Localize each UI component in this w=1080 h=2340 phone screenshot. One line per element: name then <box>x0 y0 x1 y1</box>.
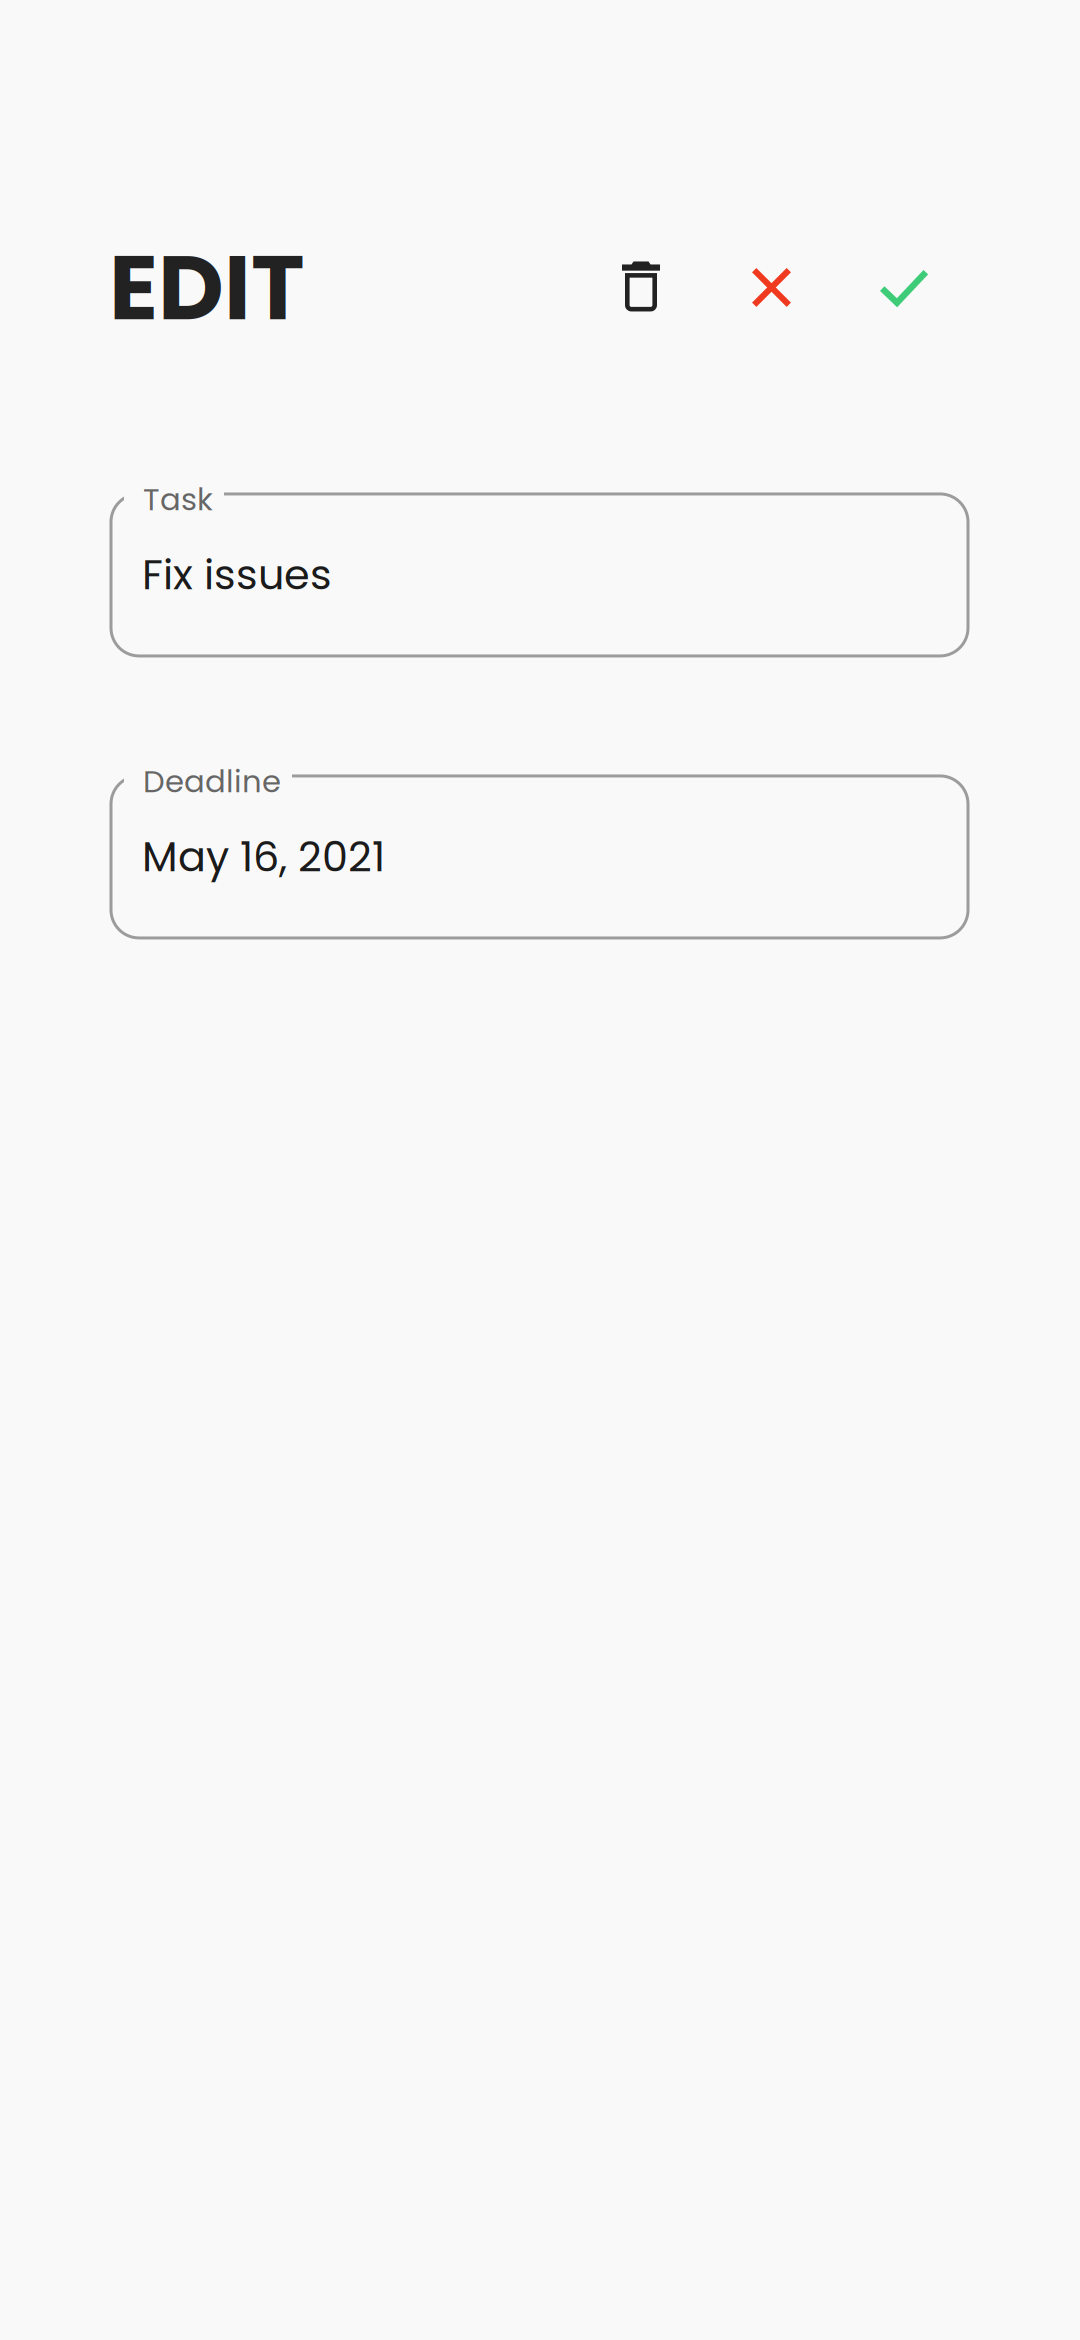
staticText: Fix issues <box>142 546 332 604</box>
button[interactable]: May 16, 2021 <box>111 776 968 938</box>
button[interactable]: Cancel <box>729 251 814 324</box>
button[interactable]: Fix issues <box>111 494 968 656</box>
button[interactable]: Delete <box>601 246 683 328</box>
staticText: Deadline <box>143 760 281 803</box>
staticText: May 16, 2021 <box>142 828 385 886</box>
staticText: Task <box>143 478 213 521</box>
button[interactable]: Save <box>857 253 951 322</box>
staticText: EDIT <box>109 224 305 351</box>
